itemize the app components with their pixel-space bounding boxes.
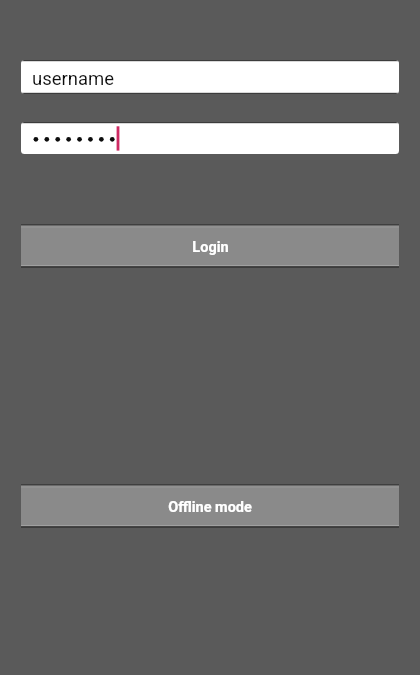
staticText: username: [32, 68, 115, 90]
staticText: Login: [192, 239, 229, 256]
staticText: Offline mode: [168, 499, 252, 516]
button[interactable]: Login: [21, 224, 399, 268]
button[interactable]: Offline mode: [21, 484, 399, 528]
button[interactable]: Username field: [21, 60, 399, 94]
button[interactable]: Password field: [21, 122, 399, 154]
